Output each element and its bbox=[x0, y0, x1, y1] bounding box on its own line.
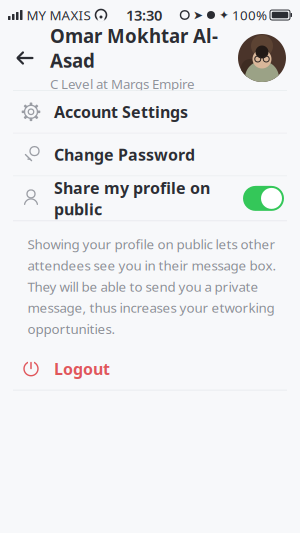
staticText: Change Password bbox=[54, 144, 195, 165]
button[interactable]: Account Settings bbox=[0, 91, 300, 133]
staticText: ✦ bbox=[219, 8, 229, 22]
staticText: Share my profile on public bbox=[54, 177, 210, 220]
staticText: Omar Mokhtar Al-Asad bbox=[50, 23, 218, 73]
button[interactable]: Share my profile on public bbox=[0, 176, 300, 220]
button[interactable]: Logout bbox=[0, 348, 300, 390]
staticText: Showing your profile on public lets othe… bbox=[27, 235, 276, 338]
staticText: Account Settings bbox=[54, 101, 188, 122]
button[interactable]: Back bbox=[10, 40, 40, 76]
button[interactable]: Profile photo bbox=[238, 34, 286, 82]
staticText: 13:30 bbox=[126, 5, 162, 25]
staticText: 100% bbox=[232, 6, 267, 24]
staticText: MY MAXIS bbox=[26, 6, 90, 24]
staticText: ➤ bbox=[193, 8, 203, 22]
staticText: Logout bbox=[54, 358, 110, 379]
button[interactable]: Change Password bbox=[0, 134, 300, 176]
staticText: C Level at Margs Empire bbox=[50, 75, 195, 93]
